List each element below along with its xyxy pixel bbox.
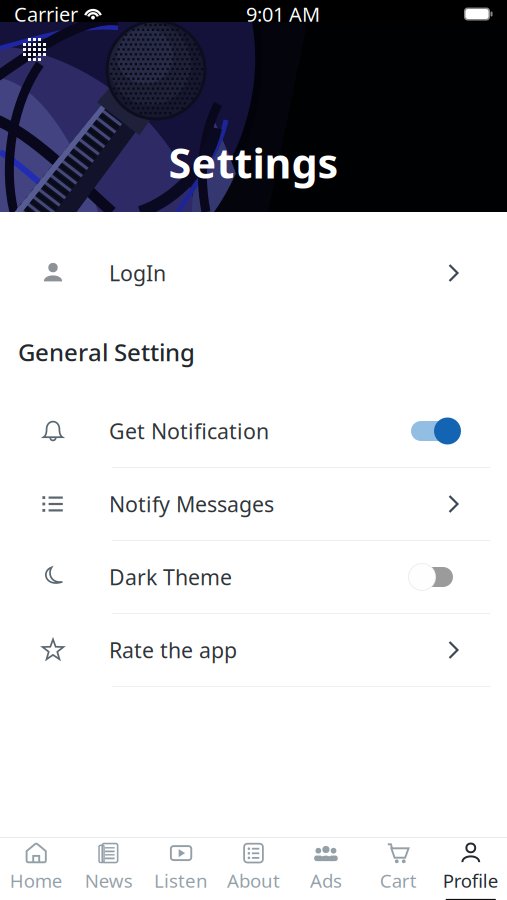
button[interactable]: Cart xyxy=(362,838,434,900)
button[interactable]: News xyxy=(72,838,145,900)
staticText: News xyxy=(85,868,133,893)
staticText: Notify Messages xyxy=(109,490,274,518)
staticText: Profile xyxy=(443,868,499,893)
staticText: Home xyxy=(10,868,63,893)
button[interactable]: Home xyxy=(0,838,72,900)
button[interactable]: LogIn xyxy=(0,237,507,309)
staticText: 9:01 AM xyxy=(246,1,320,27)
staticText: General Setting xyxy=(18,336,195,368)
button[interactable]: Rate the app xyxy=(0,614,507,686)
staticText: Ads xyxy=(310,868,342,893)
staticText: Settings xyxy=(168,135,338,190)
button[interactable]: Profile xyxy=(435,838,507,900)
staticText: Listen xyxy=(154,868,208,893)
staticText: Carrier xyxy=(14,1,78,27)
button[interactable]: Ads xyxy=(290,838,362,900)
staticText: LogIn xyxy=(109,259,166,287)
staticText: About xyxy=(227,868,280,893)
button[interactable]: Menu xyxy=(13,28,56,71)
staticText: Rate the app xyxy=(109,636,237,664)
staticText: Dark Theme xyxy=(109,563,232,591)
button[interactable]: Notify Messages xyxy=(0,468,507,540)
button[interactable]: About xyxy=(217,838,290,900)
button[interactable]: Listen xyxy=(145,838,217,900)
staticText: Cart xyxy=(380,868,417,893)
staticText: Get Notification xyxy=(109,417,269,445)
